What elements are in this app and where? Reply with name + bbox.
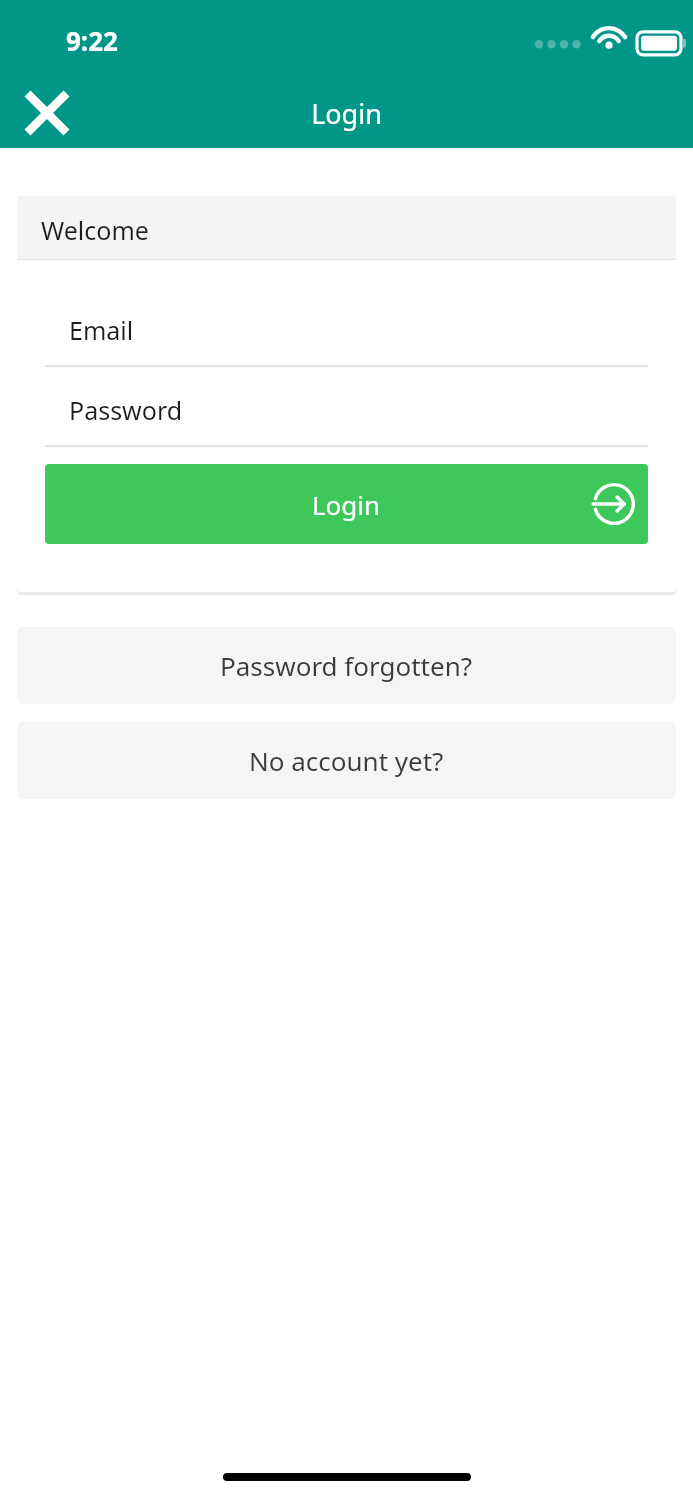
staticText: Welcome: [41, 213, 149, 247]
staticText: Password: [69, 393, 183, 427]
button[interactable]: Close: [14, 80, 80, 146]
button[interactable]: Email: [17, 260, 676, 367]
staticText: Login: [0, 95, 693, 132]
staticText: Email: [69, 313, 134, 347]
staticText: No account yet?: [249, 743, 444, 778]
button[interactable]: Login: [45, 464, 648, 544]
button[interactable]: Password: [17, 367, 676, 447]
staticText: Login: [312, 487, 381, 522]
staticText: 9:22: [66, 23, 118, 58]
staticText: Password forgotten?: [220, 648, 473, 683]
button[interactable]: Password forgotten?: [17, 627, 676, 704]
button[interactable]: No account yet?: [17, 722, 676, 799]
